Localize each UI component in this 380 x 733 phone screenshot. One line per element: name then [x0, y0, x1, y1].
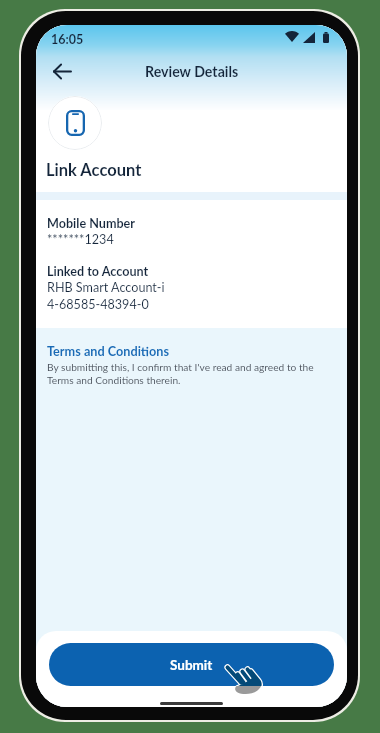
- staticText: *******1234: [47, 232, 114, 247]
- staticText: 4-68585-48394-0: [47, 297, 149, 312]
- button[interactable]: Back: [44, 53, 80, 89]
- staticText: Linked to Account: [47, 264, 149, 279]
- staticText: Review Details: [145, 63, 239, 80]
- staticText: Terms and Conditions: [47, 343, 170, 358]
- staticText: Link Account: [46, 160, 142, 180]
- staticText: Submit: [170, 657, 213, 673]
- staticText: By submitting this, I confirm that I've …: [47, 361, 317, 386]
- staticText: 16:05: [51, 32, 84, 47]
- staticText: RHB Smart Account-i: [47, 280, 165, 295]
- button[interactable]: Submit: [49, 643, 334, 686]
- staticText: Mobile Number: [47, 216, 136, 231]
